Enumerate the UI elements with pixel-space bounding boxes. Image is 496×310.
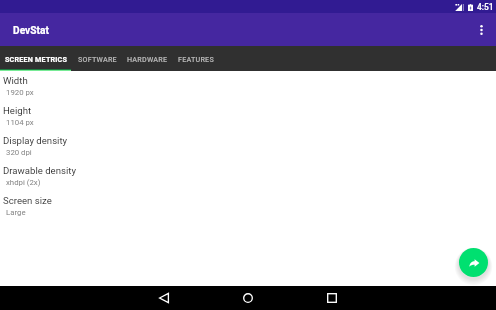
staticText: SCREEN METRICS — [5, 55, 68, 63]
staticText: Display density — [3, 135, 68, 146]
button[interactable]: SCREEN METRICS — [0, 46, 73, 71]
staticText: Drawable density — [3, 165, 76, 176]
button[interactable]: SOFTWARE — [73, 46, 122, 71]
staticText: Width — [3, 75, 28, 86]
staticText: HARDWARE — [127, 55, 168, 63]
button[interactable]: Width — [0, 75, 496, 105]
button[interactable]: Share — [459, 248, 488, 277]
staticText: 1920 px — [6, 88, 34, 97]
staticText: Large — [6, 208, 26, 217]
button[interactable]: Drawable density — [0, 165, 496, 195]
button[interactable]: Recents — [310, 286, 354, 310]
staticText: DevStat — [13, 25, 49, 37]
staticText: FEATURES — [178, 55, 214, 63]
button[interactable]: HARDWARE — [122, 46, 173, 71]
button[interactable]: Back — [142, 286, 186, 310]
staticText: 320 dpi — [6, 148, 32, 157]
staticText: xhdpi (2x) — [6, 178, 41, 187]
staticText: Screen size — [3, 195, 52, 206]
staticText: SOFTWARE — [78, 55, 117, 63]
staticText: 4:51 — [477, 2, 494, 12]
button[interactable]: Home — [226, 286, 270, 310]
button[interactable]: FEATURES — [173, 46, 219, 71]
button[interactable]: Height — [0, 105, 496, 135]
staticText: 1104 px — [6, 118, 34, 127]
button[interactable]: Display density — [0, 135, 496, 165]
button[interactable]: More options — [468, 16, 496, 44]
staticText: Height — [3, 105, 32, 116]
button[interactable]: Screen size — [0, 195, 496, 225]
